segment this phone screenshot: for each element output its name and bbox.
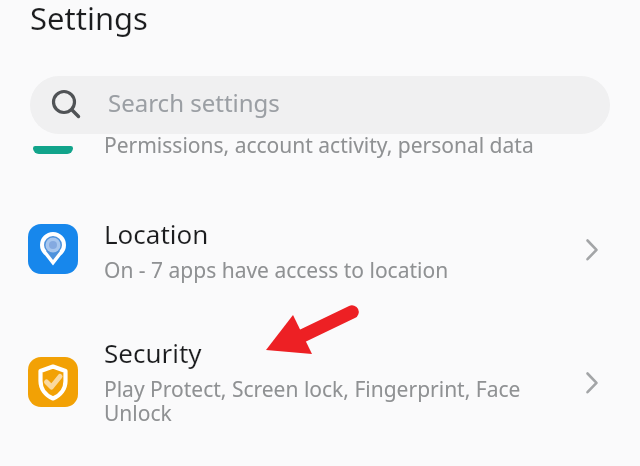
staticText: Location [104, 216, 209, 251]
button[interactable]: Location [0, 196, 640, 308]
staticText: Search settings [108, 86, 280, 119]
staticText: Security [104, 335, 202, 370]
staticText: Permissions, account activity, personal … [104, 131, 534, 160]
staticText: Play Protect, Screen lock, Fingerprint, … [104, 375, 521, 404]
button[interactable]: Search settings [30, 76, 610, 134]
staticText: On - 7 apps have access to location [104, 256, 449, 285]
button[interactable]: Security [0, 330, 640, 450]
staticText: Unlock [104, 399, 172, 428]
staticText: Settings [30, 0, 148, 39]
